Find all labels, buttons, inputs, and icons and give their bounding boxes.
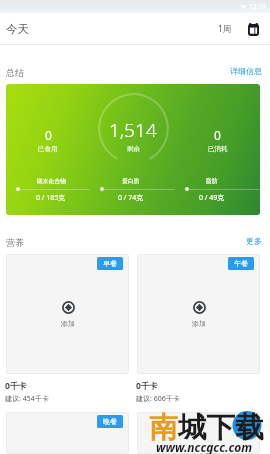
staticText: 0 [214,127,221,143]
button[interactable]: 详细信息 [222,60,270,84]
staticText: 0 / 49克 [199,193,225,203]
button[interactable]: Calendar [245,21,261,37]
staticText: 南 [149,410,178,446]
staticText: 脂肪 [206,177,218,184]
staticText: 午餐 [234,259,248,268]
staticText: 蛋白质 [122,177,140,184]
staticText: 添加 [192,319,206,328]
staticText: 1,514 [109,117,157,143]
button[interactable]: 1周 [216,18,234,40]
staticText: 今天 [6,22,29,36]
staticText: 详细信息 [230,66,262,76]
staticText: 早餐 [103,259,117,268]
staticText: 12:19 [249,2,266,11]
staticText: www.nccgcc.com [156,439,253,454]
staticText: 已食用 [38,145,58,153]
staticText: 0千卡 [136,380,158,392]
staticText: 营养 [6,237,24,248]
button[interactable]: 早餐 [6,254,129,374]
staticText: 0 [45,127,52,143]
button[interactable]: 晚餐 [6,412,129,454]
staticText: 建议: 454千卡 [5,394,49,404]
staticText: 剩余 [127,145,140,153]
staticText: 总结 [6,67,24,78]
button[interactable]: 更多 [238,230,270,254]
staticText: 建议: 606千卡 [136,394,180,404]
staticText: 0 / 74克 [118,193,144,203]
staticText: 0 / 185克 [36,193,66,203]
button[interactable]: 午餐 [228,257,254,270]
staticText: 1周 [218,23,232,35]
button[interactable]: 晚餐 [97,415,123,428]
staticText: 0千卡 [5,380,27,392]
staticText: 晚餐 [103,417,117,426]
staticText: 城下载 [178,410,264,446]
button[interactable] [137,412,260,454]
staticText: 添加 [61,319,75,328]
staticText: 碳水化合物 [37,177,66,184]
staticText: 已消耗 [208,145,228,153]
button[interactable]: 早餐 [97,257,123,270]
button[interactable]: 午餐 [137,254,260,374]
staticText: 更多 [246,236,262,246]
